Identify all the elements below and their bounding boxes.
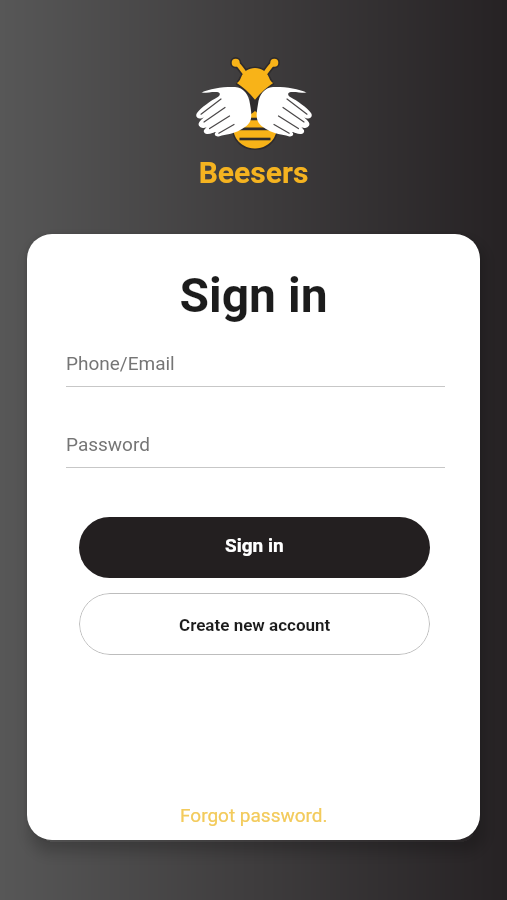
button[interactable]: Sign in (79, 517, 430, 578)
staticText: Sign in (225, 534, 284, 556)
button[interactable]: Forgot password. (27, 800, 480, 830)
button[interactable]: Create new account (79, 593, 430, 655)
staticText: Password (66, 433, 150, 455)
staticText: Phone/Email (66, 352, 175, 374)
staticText: Beesers (0, 155, 507, 190)
staticText: Forgot password. (180, 804, 328, 826)
staticText: Create new account (179, 615, 331, 635)
staticText: Sign in (27, 267, 480, 323)
